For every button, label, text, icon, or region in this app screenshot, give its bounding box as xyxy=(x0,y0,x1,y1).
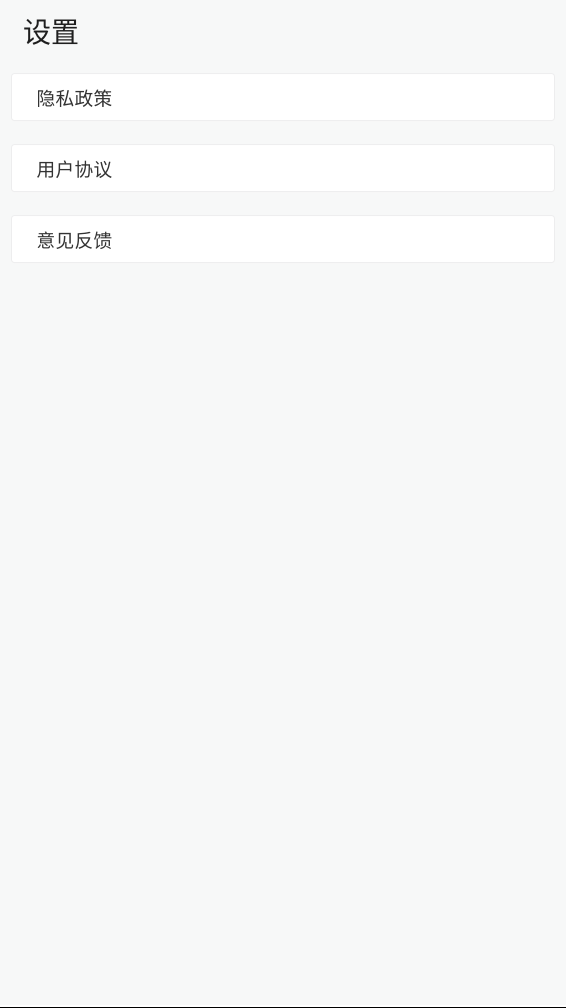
button[interactable]: 隐私政策 xyxy=(11,73,554,120)
button[interactable]: 用户协议 xyxy=(11,144,554,191)
button[interactable]: 意见反馈 xyxy=(11,215,554,262)
staticText: 隐私政策 xyxy=(36,83,112,110)
staticText: 意见反馈 xyxy=(36,225,112,252)
staticText: 设置 xyxy=(23,10,79,50)
staticText: 用户协议 xyxy=(36,154,112,181)
